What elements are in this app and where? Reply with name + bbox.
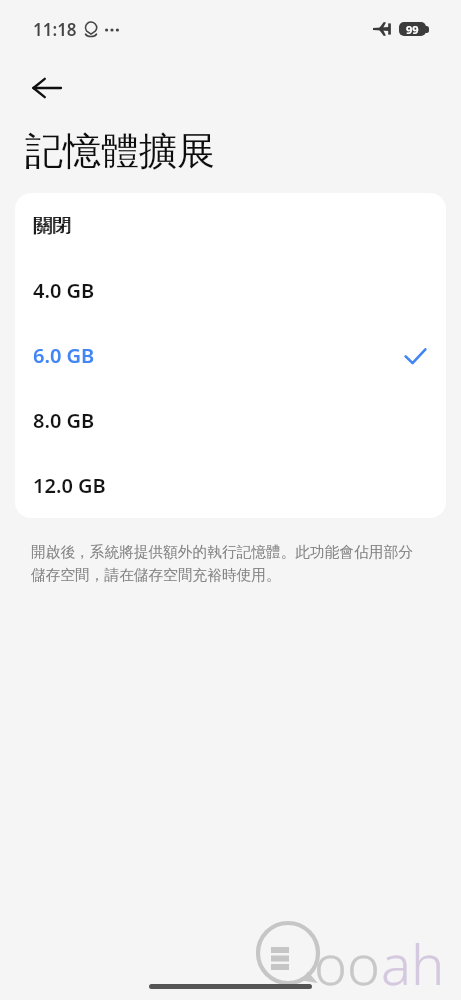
staticText: 關閉 <box>33 214 71 238</box>
staticText: 記憶體擴展 <box>25 127 215 175</box>
button[interactable]: Back <box>32 68 80 108</box>
staticText: oo <box>314 925 381 991</box>
staticText: 4.0 GB <box>33 277 95 304</box>
button[interactable]: 4.0 GB <box>15 258 446 323</box>
staticText: 8.0 GB <box>33 407 95 434</box>
staticText: 6.0 GB <box>33 342 95 369</box>
staticText: 99 <box>406 22 419 36</box>
staticText: ah <box>381 925 445 991</box>
button[interactable]: 8.0 GB <box>15 388 446 453</box>
staticText: 11:18 <box>33 18 77 41</box>
button[interactable]: 12.0 GB <box>15 453 446 518</box>
button[interactable]: 關閉 <box>15 193 446 258</box>
staticText: 關閉 <box>34 214 72 238</box>
button[interactable]: 6.0 GB <box>15 323 446 388</box>
staticText: 開啟後，系統將提供額外的執行記憶體。此功能會佔用部分 儲存空間，請在儲存空間充裕… <box>31 543 413 584</box>
staticText: 12.0 GB <box>33 472 106 499</box>
